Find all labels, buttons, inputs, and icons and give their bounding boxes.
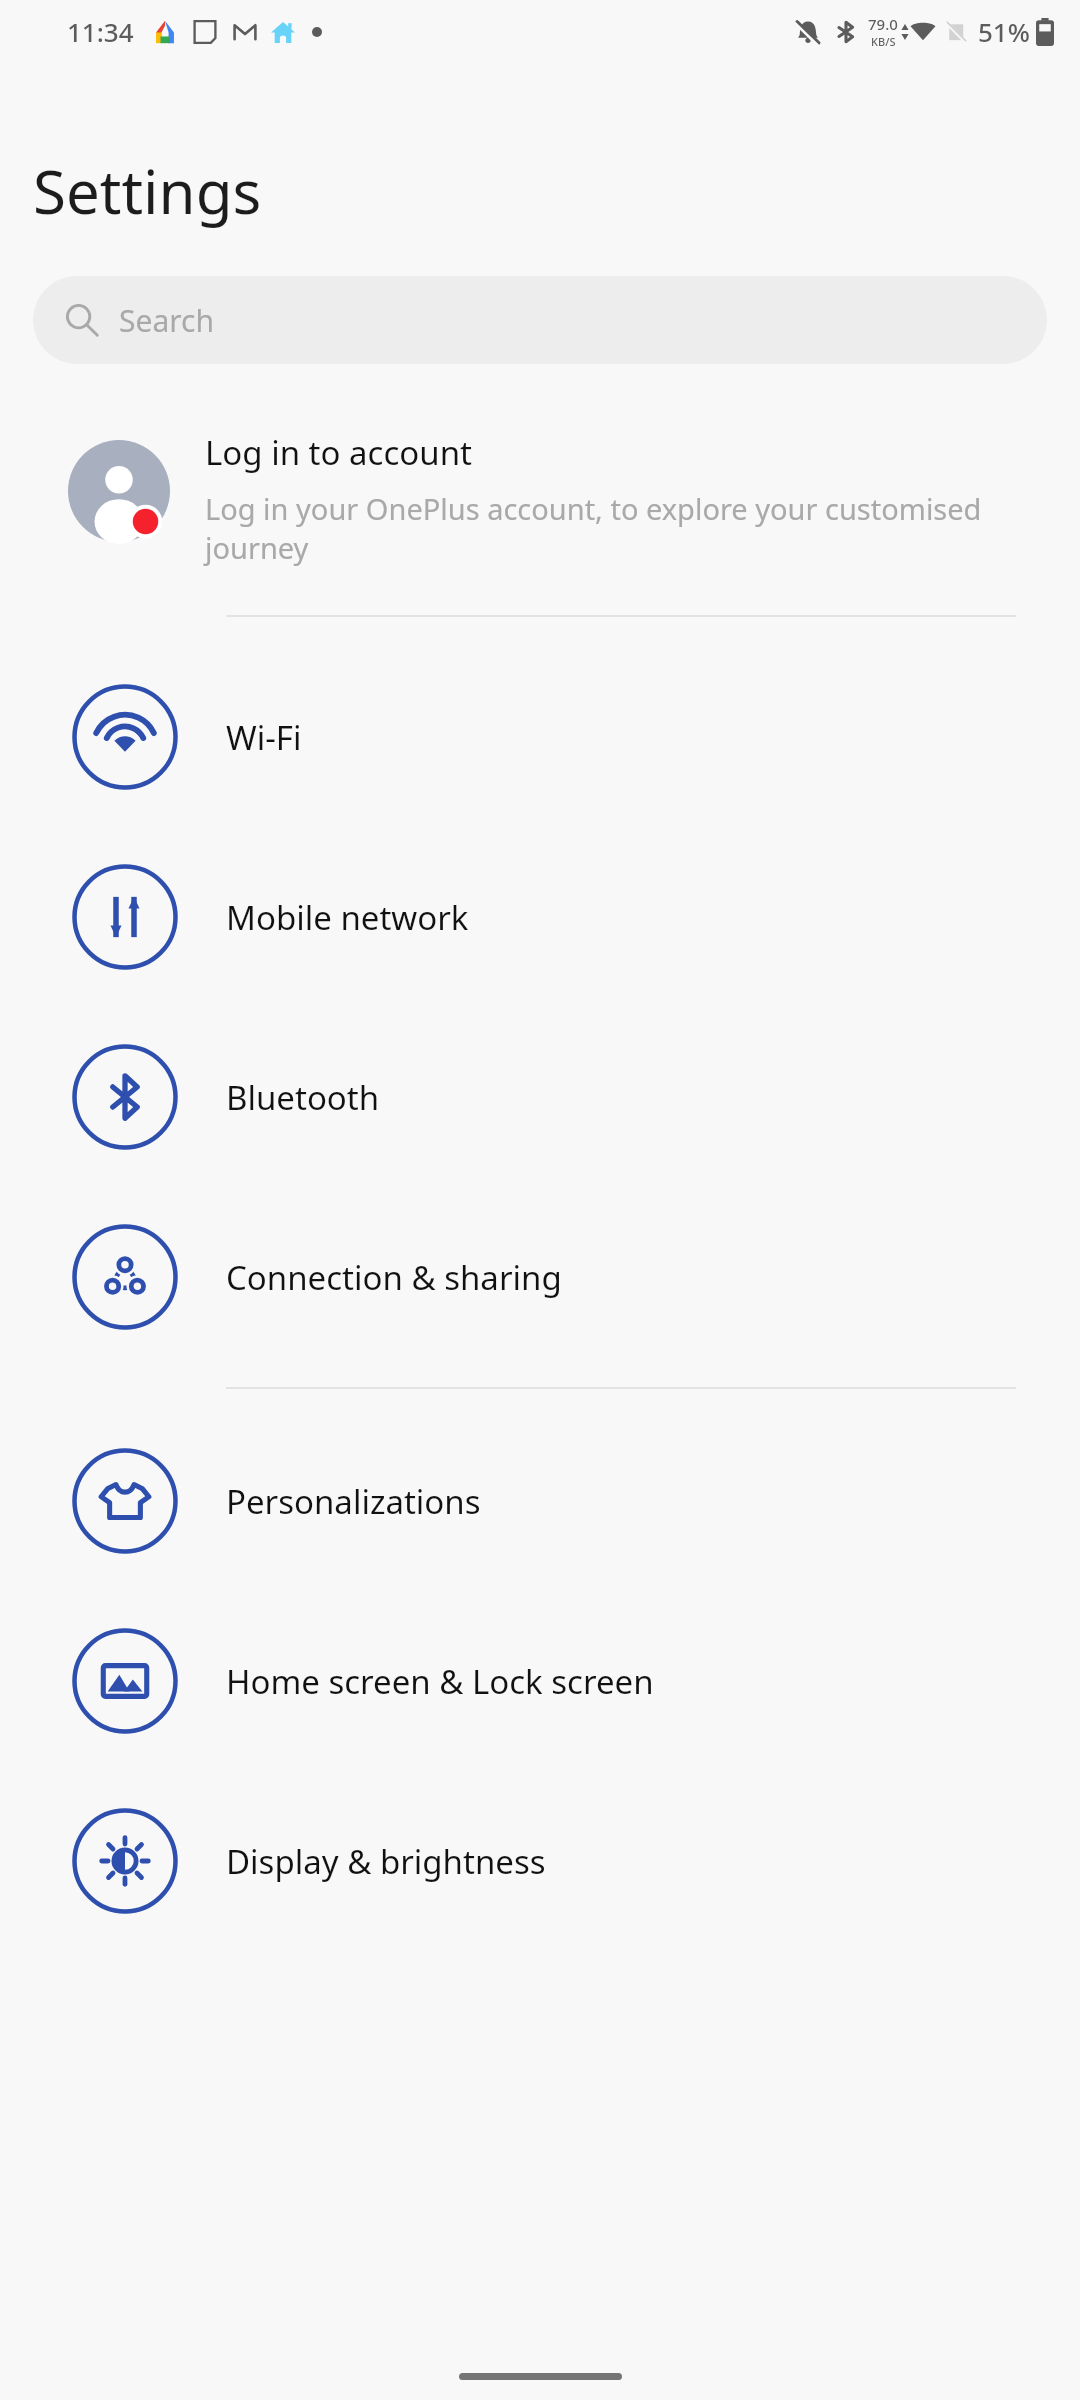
- button[interactable]: Personalizations: [0, 1411, 1080, 1591]
- staticText: KB/S: [871, 34, 896, 49]
- staticText: Log in to account: [205, 430, 472, 475]
- button[interactable]: Display & brightness: [0, 1771, 1080, 1951]
- button[interactable]: Wi-Fi: [0, 647, 1080, 827]
- staticText: Wi-Fi: [226, 715, 302, 760]
- button[interactable]: Connection & sharing: [0, 1187, 1080, 1367]
- staticText: Home screen & Lock screen: [226, 1659, 654, 1704]
- button[interactable]: Log in to account: [0, 422, 1080, 575]
- staticText: Settings: [33, 150, 262, 232]
- staticText: Display & brightness: [226, 1839, 546, 1884]
- staticText: Bluetooth: [226, 1075, 380, 1120]
- staticText: 79.0: [868, 14, 898, 34]
- staticText: Search: [119, 300, 214, 341]
- staticText: Log in your OnePlus account, to explore …: [205, 489, 1040, 567]
- staticText: Personalizations: [226, 1479, 481, 1524]
- button[interactable]: Home screen & Lock screen: [0, 1591, 1080, 1771]
- staticText: 11:34: [67, 14, 134, 49]
- button[interactable]: Mobile network: [0, 827, 1080, 1007]
- staticText: Mobile network: [226, 895, 469, 940]
- staticText: Connection & sharing: [226, 1255, 562, 1300]
- button[interactable]: Bluetooth: [0, 1007, 1080, 1187]
- button[interactable]: Search: [33, 276, 1047, 364]
- staticText: 51%: [978, 14, 1030, 49]
